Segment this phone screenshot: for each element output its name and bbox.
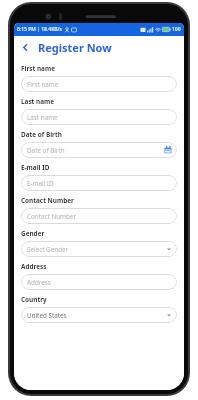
button[interactable]: Last name — [21, 109, 177, 125]
button[interactable]: Contact Number — [21, 208, 177, 224]
button[interactable]: United States — [21, 307, 177, 323]
staticText: First name — [27, 80, 59, 89]
other: Pick date — [164, 146, 172, 154]
button[interactable]: Address — [21, 274, 177, 290]
staticText: E-mail ID — [21, 163, 50, 172]
staticText: E-mail ID — [27, 179, 54, 188]
button[interactable]: Select Gender — [21, 241, 177, 257]
staticText: Gender — [21, 229, 45, 238]
staticText: First name — [21, 64, 55, 73]
staticText: Country — [21, 295, 47, 304]
staticText: Contact Number — [21, 196, 74, 205]
staticText: Register Now — [38, 40, 112, 55]
staticText: 6:15 PM | 18.4KB/s — [17, 26, 62, 33]
staticText: Address — [27, 278, 51, 287]
staticText: Select Gender — [27, 245, 69, 254]
staticText: Address — [21, 262, 47, 271]
staticText: Date of Birth — [27, 146, 65, 155]
button[interactable]: E-mail ID — [21, 175, 177, 191]
button[interactable]: First name — [21, 76, 177, 92]
staticText: 100 — [172, 26, 181, 33]
staticText: Last name — [21, 97, 55, 106]
button[interactable]: Date of Birth — [21, 142, 177, 158]
staticText: United States — [27, 311, 67, 320]
staticText: Date of Birth — [21, 130, 62, 139]
staticText: Contact Number — [27, 212, 77, 221]
staticText: Last name — [27, 113, 58, 122]
button[interactable]: Back — [16, 38, 34, 56]
